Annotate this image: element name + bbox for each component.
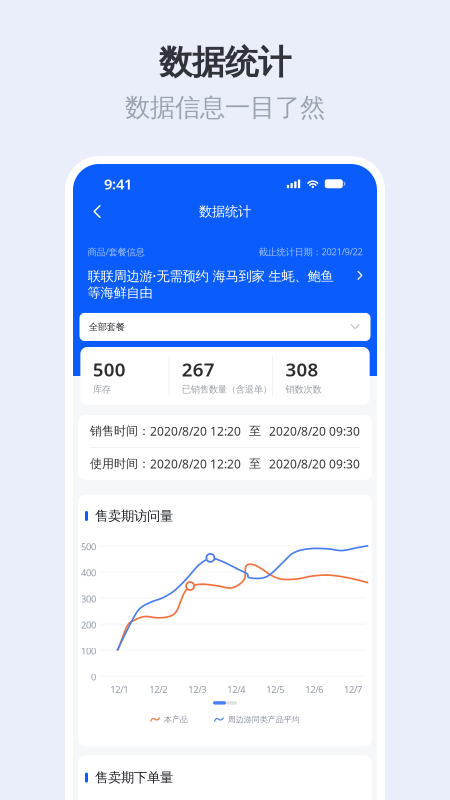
staticText: 400: [81, 566, 96, 579]
staticText: 267: [182, 357, 215, 382]
button[interactable]: 全部套餐: [73, 301, 377, 341]
staticText: 库存: [93, 384, 111, 395]
staticText: 数据信息一目了然: [125, 92, 325, 123]
staticText: 全部套餐: [89, 321, 125, 333]
staticText: 商品/套餐信息: [87, 245, 144, 258]
staticText: 12/1: [110, 683, 128, 696]
staticText: 至: [241, 424, 269, 438]
staticText: 联联周边游·无需预约 海马到家 生蚝、鲍鱼 等海鲜自由: [87, 267, 333, 301]
staticText: 12/5: [266, 683, 284, 696]
staticText: 300: [81, 593, 96, 605]
staticText: 12/4: [227, 683, 245, 696]
staticText: 500: [93, 357, 126, 382]
staticText: 12/6: [305, 683, 323, 696]
staticText: 截止统计日期：2021/9/22: [258, 245, 362, 258]
staticText: 2020/8/20 09:30: [269, 456, 360, 472]
staticText: 500: [81, 540, 96, 553]
staticText: 已销售数量（含退单）: [182, 384, 272, 395]
staticText: 周边游同类产品平均: [228, 715, 300, 724]
staticText: 308: [286, 357, 319, 382]
staticText: 9:41: [104, 174, 132, 193]
staticText: 100: [81, 645, 96, 657]
staticText: 12/3: [188, 683, 206, 696]
staticText: 销数次数: [286, 384, 322, 395]
button[interactable]: Back: [83, 198, 111, 224]
staticText: 12/7: [344, 683, 362, 696]
staticText: 售卖期下单量: [95, 769, 173, 786]
staticText: 200: [81, 619, 96, 631]
staticText: 销售时间：: [90, 424, 150, 438]
staticText: 数据统计: [159, 42, 291, 83]
staticText: 0: [91, 671, 96, 683]
staticText: 2020/8/20 12:20: [150, 423, 241, 439]
staticText: 2020/8/20 12:20: [150, 456, 241, 472]
staticText: 12/2: [149, 683, 167, 696]
staticText: 至: [241, 456, 269, 471]
staticText: 售卖期访问量: [95, 508, 173, 524]
staticText: 本产品: [164, 715, 188, 724]
button[interactable]: 联联周边游·无需预约 海马到家 生蚝、鲍鱼 等海鲜自由: [73, 258, 377, 301]
staticText: 2020/8/20 09:30: [269, 423, 360, 439]
staticText: 使用时间：: [90, 456, 150, 471]
staticText: 数据统计: [199, 203, 251, 220]
